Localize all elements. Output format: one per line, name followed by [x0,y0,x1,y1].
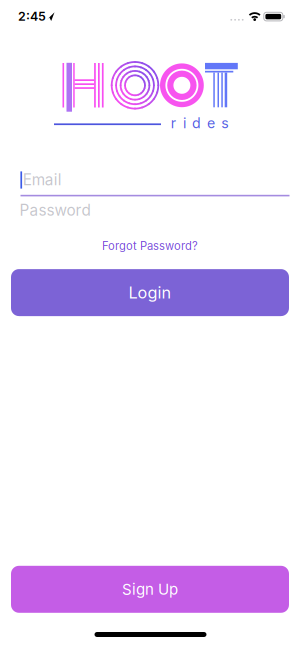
textField[interactable]: Email [23,170,62,189]
button[interactable]: Sign Up [11,566,289,613]
staticText: Sign Up [122,580,178,598]
staticText: rides [171,114,228,132]
secureTextField[interactable]: Password [19,201,90,219]
button[interactable]: Forgot Password? [102,239,198,253]
staticText: Password [19,201,90,219]
staticText: Forgot Password? [102,239,198,253]
staticText: Login [128,283,171,302]
button[interactable]: Login [11,269,289,316]
staticText: Email [23,170,62,189]
staticText: 2:45 [18,9,46,24]
